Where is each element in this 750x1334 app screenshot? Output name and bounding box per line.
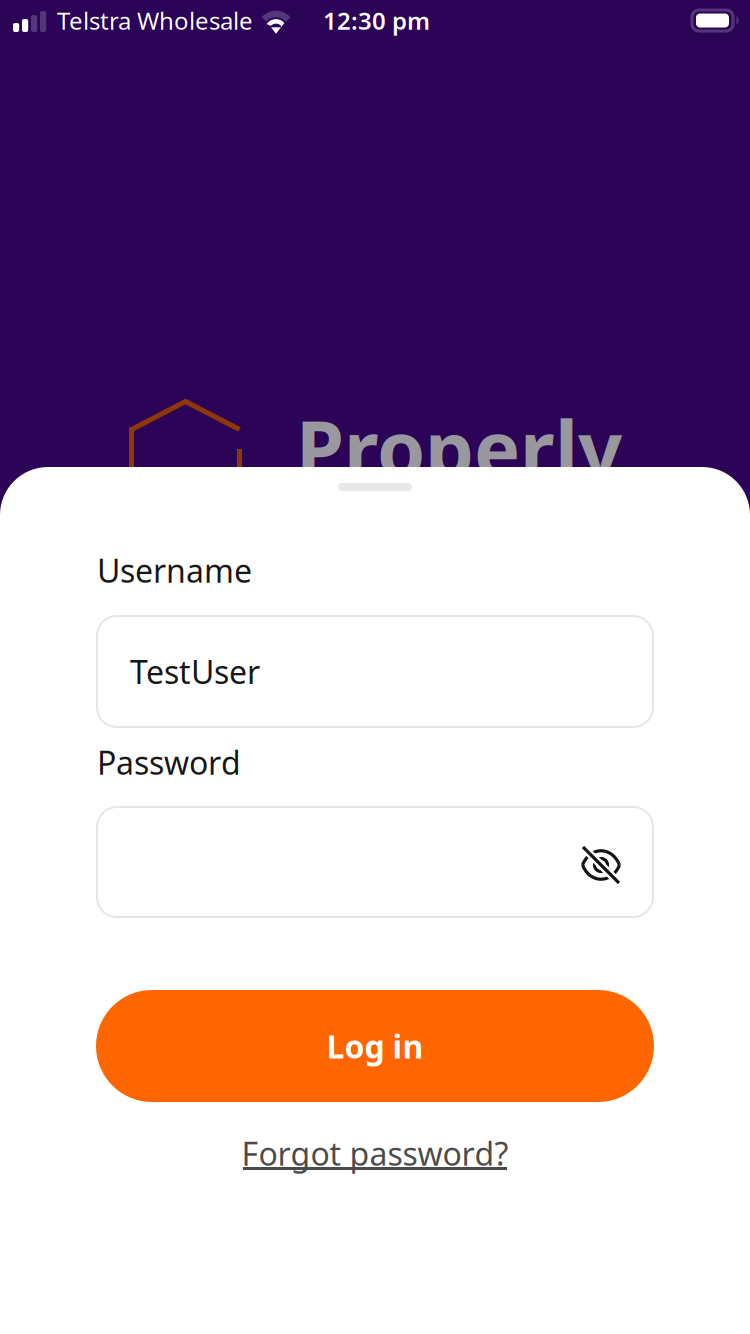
staticText: Properly [296, 396, 622, 499]
staticText: Telstra Wholesale [57, 5, 253, 36]
button[interactable]: Password [97, 807, 653, 917]
staticText: Log in [326, 1025, 423, 1067]
button[interactable]: Show password [581, 807, 653, 917]
staticText: 12:30 pm [323, 5, 430, 36]
button[interactable]: Forgot password? [241, 1132, 508, 1233]
staticText: Forgot password? [241, 1132, 508, 1174]
button[interactable]: TestUser [97, 616, 653, 727]
staticText: Password [97, 741, 241, 783]
staticText: Username [97, 549, 252, 591]
button[interactable]: Log in [96, 990, 654, 1102]
staticText: TestUser [130, 650, 260, 693]
